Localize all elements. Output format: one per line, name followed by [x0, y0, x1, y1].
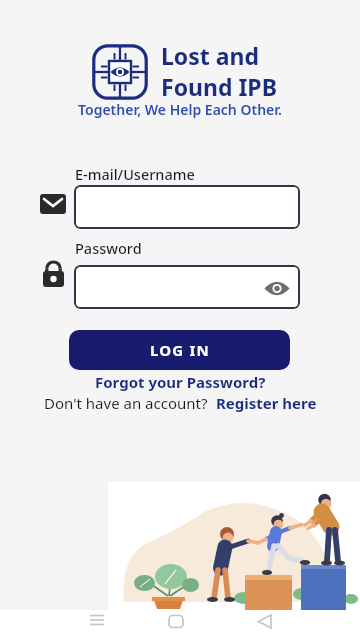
staticText: Don't have an account? — [44, 393, 216, 413]
staticText: E-mail/Username — [75, 164, 195, 184]
button[interactable] — [263, 278, 291, 299]
staticText: Found IPB — [161, 71, 277, 102]
button[interactable] — [83, 608, 111, 636]
button[interactable] — [162, 608, 190, 636]
button[interactable] — [74, 265, 300, 309]
button[interactable] — [251, 608, 279, 636]
staticText: Lost and — [161, 40, 260, 71]
staticText: Password — [75, 238, 142, 258]
button[interactable]: Forgot your Password? — [95, 372, 266, 392]
button[interactable]: LOG IN — [69, 330, 290, 370]
button[interactable]: Register here — [216, 393, 317, 413]
staticText: LOG IN — [150, 340, 210, 360]
staticText: Together, We Help Each Other. — [0, 100, 360, 119]
button[interactable] — [74, 185, 300, 229]
